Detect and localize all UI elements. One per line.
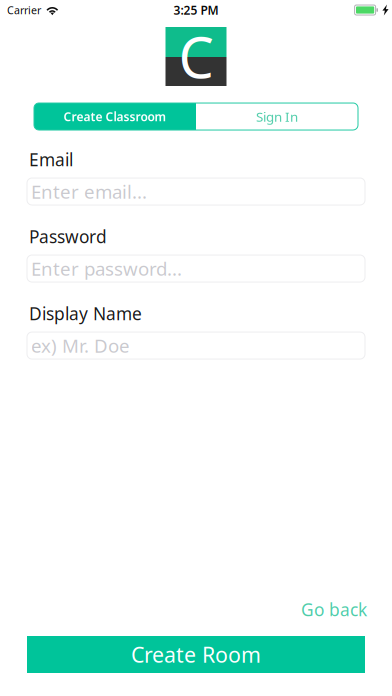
- staticText: Display Name: [29, 302, 142, 325]
- button[interactable]: Create Room: [27, 636, 365, 673]
- button[interactable]: Create Classroom: [34, 103, 196, 130]
- button[interactable]: Go back: [0, 598, 392, 621]
- staticText: Go back: [301, 598, 367, 621]
- staticText: Create Classroom: [63, 108, 166, 124]
- staticText: Email: [29, 148, 73, 171]
- staticText: Enter password...: [31, 256, 182, 281]
- button[interactable]: Sign In: [196, 103, 358, 130]
- staticText: Carrier: [7, 3, 41, 17]
- staticText: Sign In: [256, 108, 298, 125]
- staticText: Password: [29, 225, 107, 248]
- staticText: 3:25 PM: [173, 2, 218, 18]
- staticText: Create Room: [131, 640, 261, 669]
- button[interactable]: Enter email...: [27, 178, 365, 205]
- button[interactable]: ex) Mr. Doe: [27, 332, 365, 359]
- staticText: ex) Mr. Doe: [31, 333, 130, 358]
- staticText: C: [178, 19, 213, 94]
- button[interactable]: Enter password...: [27, 255, 365, 282]
- staticText: Enter email...: [31, 179, 147, 204]
